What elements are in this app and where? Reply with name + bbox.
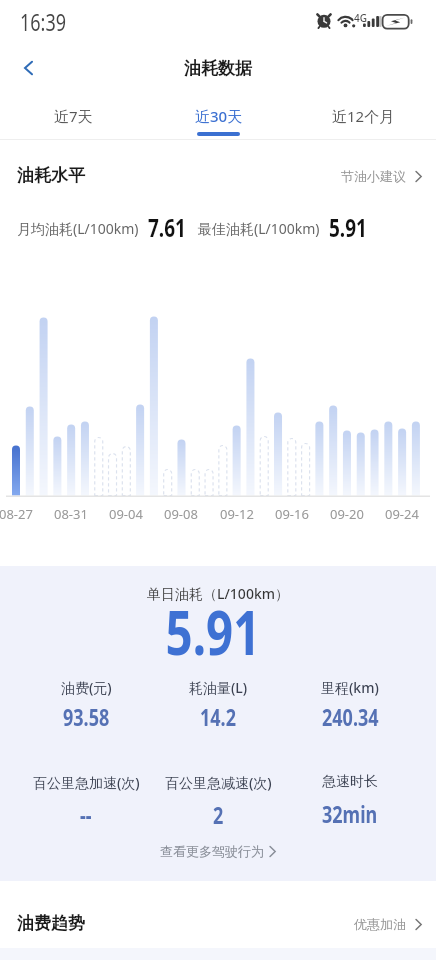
staticText: 5.91 <box>166 589 260 674</box>
staticText: 08-31 <box>54 505 88 523</box>
staticText: 09-08 <box>164 505 198 523</box>
staticText: 09-04 <box>109 505 143 523</box>
staticText: 查看更多驾驶行为 <box>160 843 264 859</box>
staticText: 单日油耗（L/100km） <box>147 584 289 603</box>
button[interactable]: 急速时长 <box>284 773 416 827</box>
staticText: 油耗数据 <box>184 58 252 79</box>
button[interactable]: 里程(km) <box>284 678 416 730</box>
button[interactable]: 近30天 <box>146 92 291 139</box>
button[interactable]: 油费(元) <box>20 678 152 730</box>
staticText: 急速时长 <box>322 773 378 791</box>
staticText: 百公里急减速(次) <box>165 773 272 792</box>
staticText: 百公里急加速(次) <box>33 773 140 792</box>
staticText: 09-16 <box>275 505 309 523</box>
staticText: 09-12 <box>220 505 254 523</box>
staticText: 08-27 <box>0 505 33 523</box>
staticText: 09-24 <box>385 505 419 523</box>
staticText: 最佳油耗(L/100km) <box>198 219 320 238</box>
staticText: 93.58 <box>63 701 110 733</box>
button[interactable]: 百公里急减速(次) <box>152 773 284 828</box>
staticText: 32min <box>322 798 378 830</box>
staticText: 2 <box>213 799 224 831</box>
staticText: -- <box>80 799 92 831</box>
staticText: 优惠加油 <box>354 916 406 932</box>
staticText: 5.91 <box>329 211 367 245</box>
staticText: 油费(元) <box>61 678 112 697</box>
staticText: 09-20 <box>330 505 364 523</box>
button[interactable]: 百公里急加速(次) <box>20 773 152 828</box>
staticText: 近12个月 <box>332 106 395 126</box>
button[interactable]: 优惠加油 <box>354 916 422 932</box>
staticText: 近30天 <box>195 106 243 126</box>
staticText: 240.34 <box>322 701 379 733</box>
staticText: 近7天 <box>54 106 93 126</box>
staticText: 油耗水平 <box>17 165 85 186</box>
staticText: 14.2 <box>200 701 236 733</box>
button[interactable]: 节油小建议 <box>341 168 422 184</box>
button[interactable]: 近7天 <box>0 92 146 139</box>
staticText: 7.61 <box>148 211 186 245</box>
staticText: 16:39 <box>20 6 67 39</box>
staticText: 节油小建议 <box>341 168 406 184</box>
staticText: 油费趋势 <box>17 913 85 934</box>
button[interactable]: 耗油量(L) <box>152 678 284 730</box>
staticText: 4G <box>354 11 367 25</box>
button[interactable]: 查看更多驾驶行为 <box>160 843 276 859</box>
button[interactable]: 近12个月 <box>291 92 436 139</box>
staticText: 耗油量(L) <box>189 678 248 697</box>
button[interactable] <box>14 54 42 82</box>
staticText: 里程(km) <box>321 678 379 697</box>
staticText: 月均油耗(L/100km) <box>17 219 139 238</box>
